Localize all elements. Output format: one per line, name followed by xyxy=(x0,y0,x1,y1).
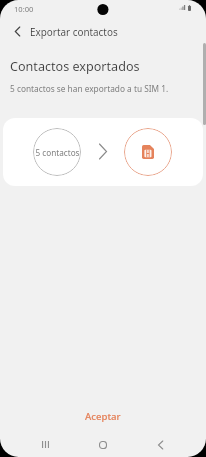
staticText: Exportar contactos xyxy=(30,25,118,38)
button[interactable]: Home xyxy=(89,432,117,457)
button[interactable]: Recent apps xyxy=(31,432,59,457)
button[interactable]: 5 contactos xyxy=(33,128,81,176)
button[interactable]: Back xyxy=(146,432,174,457)
button[interactable]: Back xyxy=(5,19,29,43)
button[interactable]: Aceptar xyxy=(0,403,206,429)
staticText: 5 contactos xyxy=(35,147,80,158)
staticText: Aceptar xyxy=(85,410,121,423)
staticText: 10:00 xyxy=(14,4,34,14)
staticText: Contactos exportados xyxy=(10,58,140,75)
button[interactable] xyxy=(124,128,172,176)
staticText: 5 contactos se han exportado a tu SIM 1. xyxy=(10,83,169,94)
